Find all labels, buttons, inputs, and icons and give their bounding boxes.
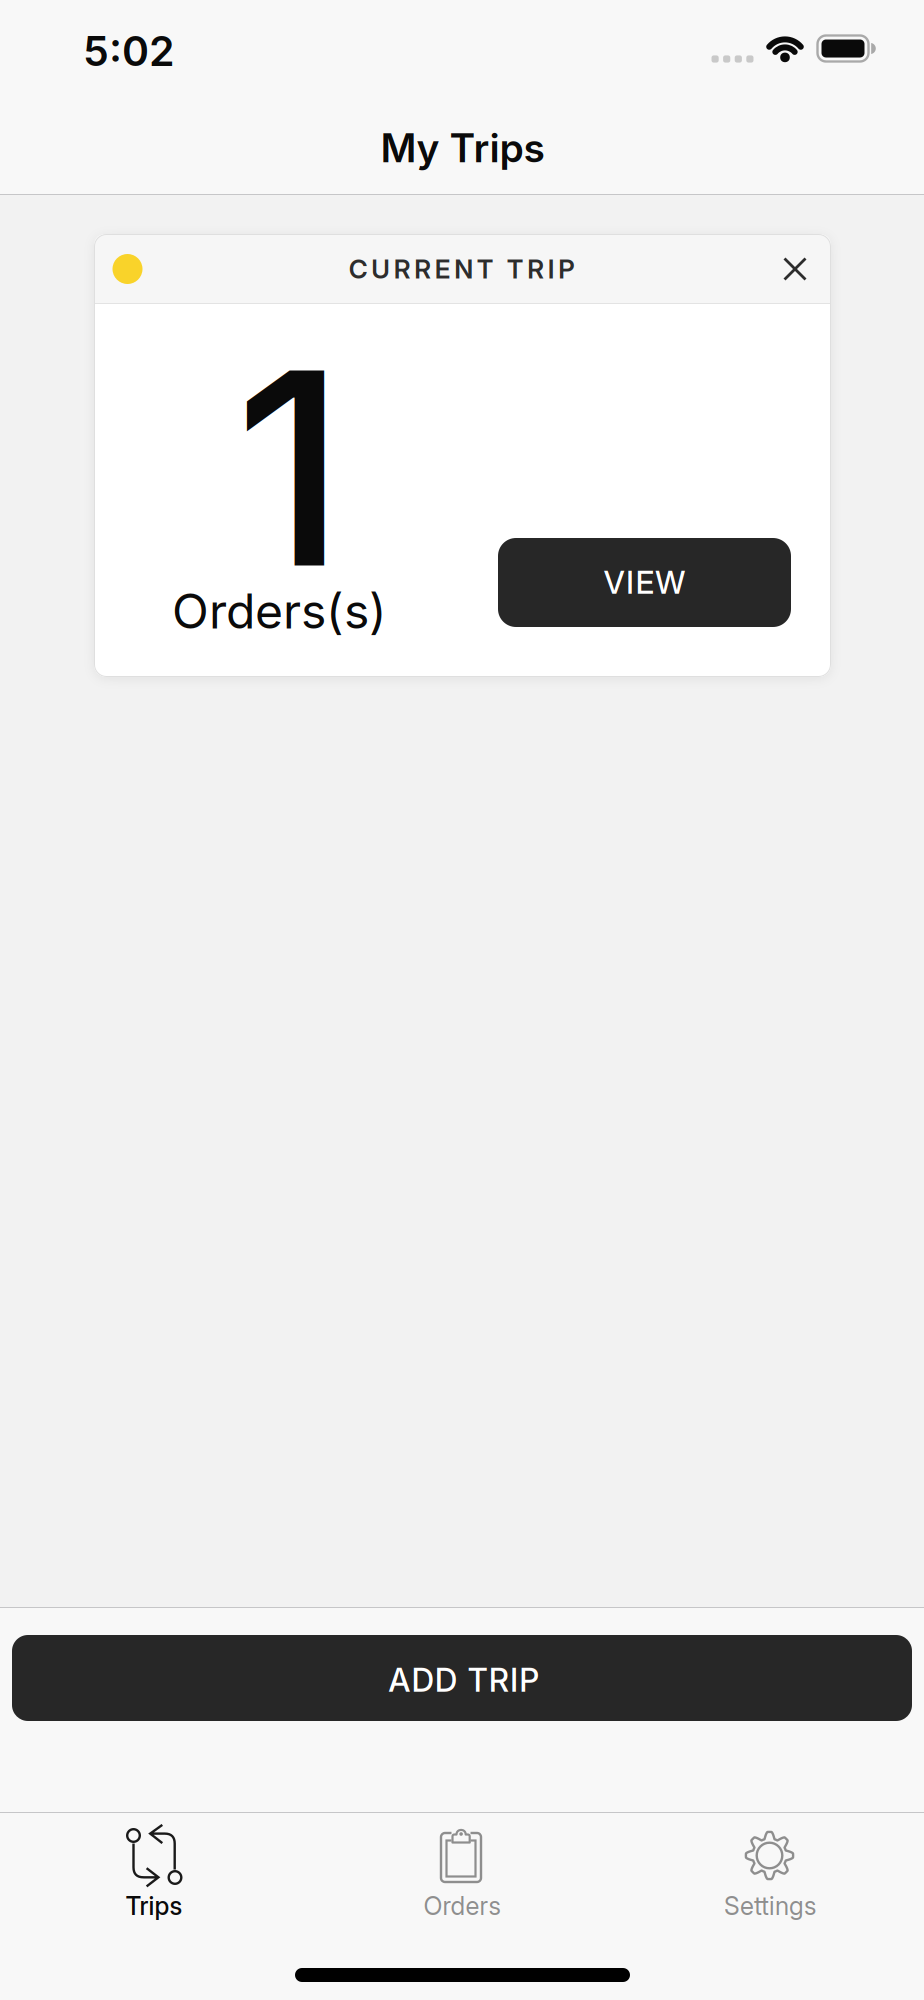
button[interactable]: Trips [0,1812,308,1942]
staticText: 1 [234,310,345,626]
button[interactable]: Close [767,241,823,297]
staticText: Settings [724,1891,816,1921]
button[interactable]: VIEW [498,538,791,627]
staticText: Orders [423,1891,500,1921]
staticText: VIEW [604,564,685,601]
staticText: Orders(s) [172,583,387,639]
button[interactable]: ADD TRIP [12,1635,912,1721]
staticText: CURRENT TRIP [349,254,574,284]
button[interactable]: Settings [616,1812,924,1942]
staticText: 5:02 [83,27,175,75]
button[interactable]: Orders [308,1812,616,1942]
staticText: ADD TRIP [388,1661,540,1699]
staticText: Trips [125,1891,182,1921]
staticText: My Trips [380,125,544,171]
